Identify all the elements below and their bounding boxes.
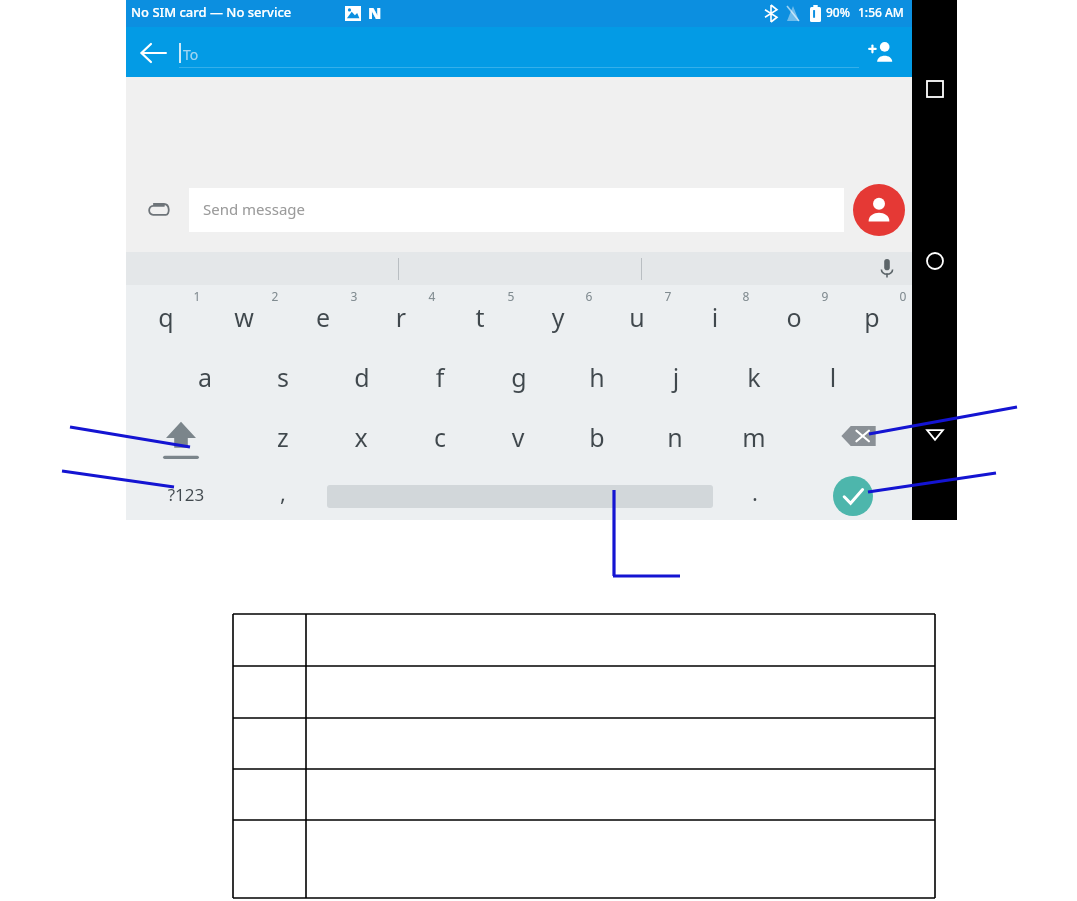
button[interactable]: [323, 410, 401, 468]
staticText: r: [341, 300, 461, 335]
button[interactable]: [716, 350, 794, 408]
button[interactable]: [441, 290, 519, 348]
staticText: y: [498, 300, 618, 335]
button[interactable]: Back: [136, 37, 170, 69]
button[interactable]: [715, 410, 793, 468]
button[interactable]: [677, 290, 755, 348]
button[interactable]: Shift: [147, 412, 215, 466]
button[interactable]: [480, 410, 558, 468]
staticText: 0: [843, 288, 963, 310]
staticText: 1:56 AM: [858, 4, 910, 26]
staticText: s: [223, 360, 343, 395]
staticText: N: [368, 2, 392, 28]
staticText: q: [106, 300, 226, 335]
button[interactable]: [255, 478, 311, 518]
staticText: 1: [137, 288, 257, 310]
staticText: 90%: [826, 4, 862, 26]
button[interactable]: [558, 410, 636, 468]
button[interactable]: [834, 290, 912, 348]
staticText: w: [184, 300, 304, 335]
button[interactable]: Contact: [853, 184, 905, 236]
staticText: ,: [223, 477, 343, 509]
staticText: 3: [294, 288, 414, 310]
button[interactable]: [402, 350, 480, 408]
staticText: f: [380, 360, 500, 395]
button[interactable]: [323, 350, 401, 408]
staticText: c: [380, 420, 500, 455]
button[interactable]: Backspace: [832, 414, 884, 458]
button[interactable]: Voice input: [873, 254, 901, 282]
button[interactable]: Space: [327, 485, 713, 508]
staticText: 2: [215, 288, 335, 310]
staticText: p: [812, 300, 932, 335]
staticText: No SIM card — No service: [131, 3, 381, 26]
button[interactable]: [637, 350, 715, 408]
staticText: 9: [765, 288, 885, 310]
staticText: l: [773, 360, 893, 395]
button[interactable]: [598, 290, 676, 348]
button[interactable]: Add contact: [862, 36, 898, 70]
button[interactable]: Back: [924, 423, 946, 445]
staticText: d: [302, 360, 422, 395]
button[interactable]: [363, 290, 441, 348]
button[interactable]: [401, 410, 479, 468]
button[interactable]: [245, 350, 323, 408]
staticText: 4: [372, 288, 492, 310]
button[interactable]: [155, 478, 219, 518]
button[interactable]: Recents: [924, 78, 946, 100]
staticText: z: [223, 420, 343, 455]
staticText: 5: [451, 288, 571, 310]
button[interactable]: Send: [833, 476, 873, 516]
staticText: Send message: [203, 199, 403, 224]
button[interactable]: [559, 350, 637, 408]
staticText: 7: [608, 288, 728, 310]
staticText: To: [183, 45, 243, 69]
button[interactable]: [206, 290, 284, 348]
button[interactable]: [166, 350, 244, 408]
staticText: g: [459, 360, 579, 395]
staticText: 8: [686, 288, 806, 310]
staticText: .: [695, 477, 815, 509]
staticText: i: [655, 300, 775, 335]
staticText: x: [301, 420, 421, 455]
button[interactable]: [520, 290, 598, 348]
button[interactable]: [127, 290, 205, 348]
staticText: v: [458, 420, 578, 455]
button[interactable]: [189, 188, 844, 232]
staticText: 6: [529, 288, 649, 310]
button[interactable]: [244, 410, 322, 468]
staticText: e: [263, 300, 383, 335]
staticText: j: [616, 360, 736, 395]
button[interactable]: [794, 350, 872, 408]
button[interactable]: [284, 290, 362, 348]
button[interactable]: [480, 350, 558, 408]
staticText: b: [537, 420, 657, 455]
button[interactable]: [755, 290, 833, 348]
button[interactable]: Home: [924, 250, 946, 272]
staticText: o: [734, 300, 854, 335]
staticText: u: [577, 300, 697, 335]
button[interactable]: Attach: [143, 195, 173, 225]
button[interactable]: [637, 410, 715, 468]
staticText: m: [694, 420, 814, 455]
staticText: h: [537, 360, 657, 395]
staticText: n: [615, 420, 735, 455]
button[interactable]: [728, 478, 784, 518]
staticText: t: [420, 300, 540, 335]
staticText: ?123: [126, 483, 246, 510]
staticText: a: [145, 360, 265, 395]
staticText: k: [694, 360, 814, 395]
